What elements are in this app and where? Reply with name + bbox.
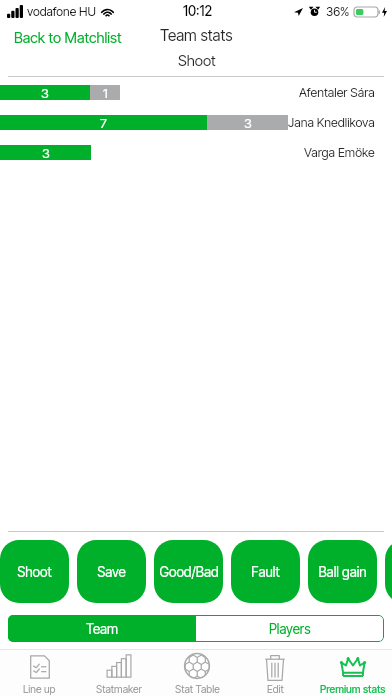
staticText: Stat Table	[175, 683, 220, 696]
button[interactable]: Statmaker	[79, 650, 158, 696]
button[interactable]: Stat Table	[158, 650, 236, 696]
button[interactable]: Edit	[236, 650, 314, 696]
staticText: Ball gain	[318, 564, 367, 580]
staticText: Players	[269, 621, 311, 637]
staticText: vodafone HU	[27, 4, 96, 19]
staticText: Shoot	[17, 564, 52, 580]
staticText: Team	[86, 621, 119, 637]
button[interactable]: Good/Bad	[154, 540, 223, 603]
button[interactable]: Shoot	[0, 540, 69, 603]
staticText: Edit	[267, 683, 284, 696]
button[interactable]: Ball gain	[308, 540, 377, 603]
staticText: Afentaler Sára	[299, 85, 375, 100]
button[interactable]: Team	[8, 615, 196, 642]
staticText: 7	[100, 115, 107, 130]
staticText: Good/Bad	[159, 564, 219, 580]
staticText: Team stats	[160, 26, 233, 45]
staticText: 3	[244, 115, 252, 130]
staticText: 3	[41, 85, 49, 100]
staticText: 36%	[326, 4, 350, 19]
button[interactable]: Line up	[0, 650, 79, 696]
staticText: Shoot	[178, 52, 216, 70]
staticText: 1	[103, 85, 108, 100]
button[interactable]: Players	[196, 615, 384, 642]
staticText: 3	[42, 145, 50, 160]
staticText: Premium stats	[320, 683, 386, 696]
staticText: Fault	[251, 564, 280, 580]
staticText: Varga Emöke	[304, 145, 375, 160]
staticText: Statmaker	[96, 683, 142, 696]
button[interactable]: 3	[0, 85, 392, 100]
button[interactable]: 7	[0, 115, 392, 130]
staticText: Save	[97, 564, 126, 580]
button[interactable]: Premium stats	[314, 650, 392, 696]
button[interactable]: 3	[0, 145, 392, 160]
button[interactable]: Back to Matchlist	[0, 22, 130, 53]
staticText: 10:12	[183, 3, 213, 19]
button[interactable]: Fault	[231, 540, 300, 603]
button[interactable]: Lost ball	[385, 540, 392, 603]
staticText: Jana Knedlikova	[288, 115, 375, 130]
staticText: Back to Matchlist	[14, 29, 122, 47]
button[interactable]: Save	[77, 540, 146, 603]
staticText: Line up	[23, 683, 56, 696]
